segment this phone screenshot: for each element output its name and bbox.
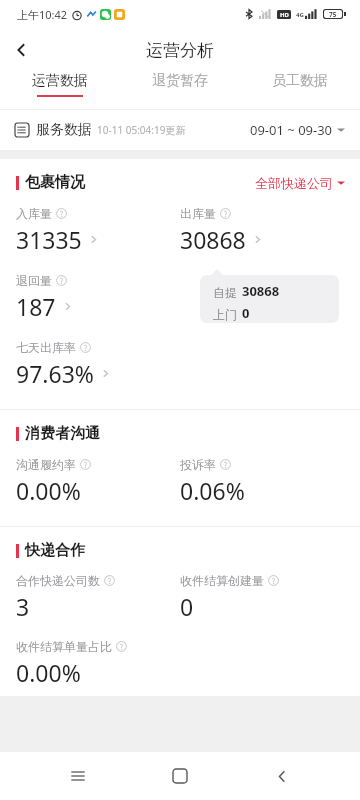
staticText: 0.00% <box>16 657 81 688</box>
button[interactable]: 收件结算单量占比 <box>16 639 180 688</box>
staticText: 上门 <box>213 307 237 322</box>
button[interactable]: 退回量 <box>16 273 180 322</box>
staticText: 31335 <box>16 224 82 255</box>
button[interactable]: Recent apps <box>54 752 102 800</box>
button[interactable]: 合作快递公司数 <box>16 573 180 622</box>
staticText: 收件结算创建量 <box>180 573 264 588</box>
staticText: 入库量 <box>16 206 52 221</box>
staticText: 服务数据 <box>36 121 92 139</box>
staticText: 消费者沟通 <box>25 424 100 443</box>
button[interactable]: 运营数据 <box>0 72 120 97</box>
button[interactable]: 全部快递公司 <box>255 175 345 191</box>
button[interactable]: 入库量 <box>16 206 180 255</box>
button[interactable]: 退货暂存 <box>120 72 240 97</box>
button[interactable]: Back <box>0 28 44 72</box>
staticText: 30868 <box>180 224 246 255</box>
staticText: HD <box>280 11 289 19</box>
button[interactable]: 七天出库率 <box>16 340 180 389</box>
staticText: 0 <box>180 591 194 622</box>
staticText: 运营数据 <box>32 72 88 90</box>
staticText: 10-11 05:04:19更新 <box>97 123 186 137</box>
staticText: 退回量 <box>16 273 52 288</box>
button[interactable]: Home <box>156 752 204 800</box>
staticText: 0.06% <box>180 475 245 506</box>
staticText: 97.63% <box>16 358 94 389</box>
staticText: 0 <box>242 304 250 322</box>
staticText: 七天出库率 <box>16 340 76 355</box>
staticText: 187 <box>16 291 56 322</box>
button[interactable]: 出库量 <box>180 206 344 255</box>
button[interactable]: 投诉率 <box>180 457 344 506</box>
button[interactable]: 员工数据 <box>240 72 360 97</box>
staticText: 快递合作 <box>25 541 85 560</box>
button[interactable]: Back <box>258 752 306 800</box>
staticText: 3 <box>16 591 30 622</box>
staticText: 4G <box>296 11 304 19</box>
staticText: 30868 <box>242 282 280 300</box>
staticText: 自提 <box>213 285 237 300</box>
staticText: 运营分析 <box>146 40 214 61</box>
staticText: 沟通履约率 <box>16 457 76 472</box>
button[interactable]: 收件结算创建量 <box>180 573 344 622</box>
staticText: 包裹情况 <box>25 173 85 192</box>
staticText: 员工数据 <box>272 72 328 90</box>
staticText: 全部快递公司 <box>255 175 333 191</box>
staticText: 09-01 ~ 09-30 <box>250 121 333 139</box>
staticText: 0.00% <box>16 475 81 506</box>
staticText: 出库量 <box>180 206 216 221</box>
button[interactable]: 09-01 ~ 09-30 <box>250 121 345 139</box>
button[interactable]: 沟通履约率 <box>16 457 180 506</box>
staticText: 投诉率 <box>180 457 216 472</box>
staticText: 收件结算单量占比 <box>16 639 112 654</box>
staticText: 合作快递公司数 <box>16 573 100 588</box>
staticText: 75 <box>329 10 337 18</box>
staticText: 退货暂存 <box>152 72 208 90</box>
staticText: 上午10:42 <box>17 7 68 22</box>
